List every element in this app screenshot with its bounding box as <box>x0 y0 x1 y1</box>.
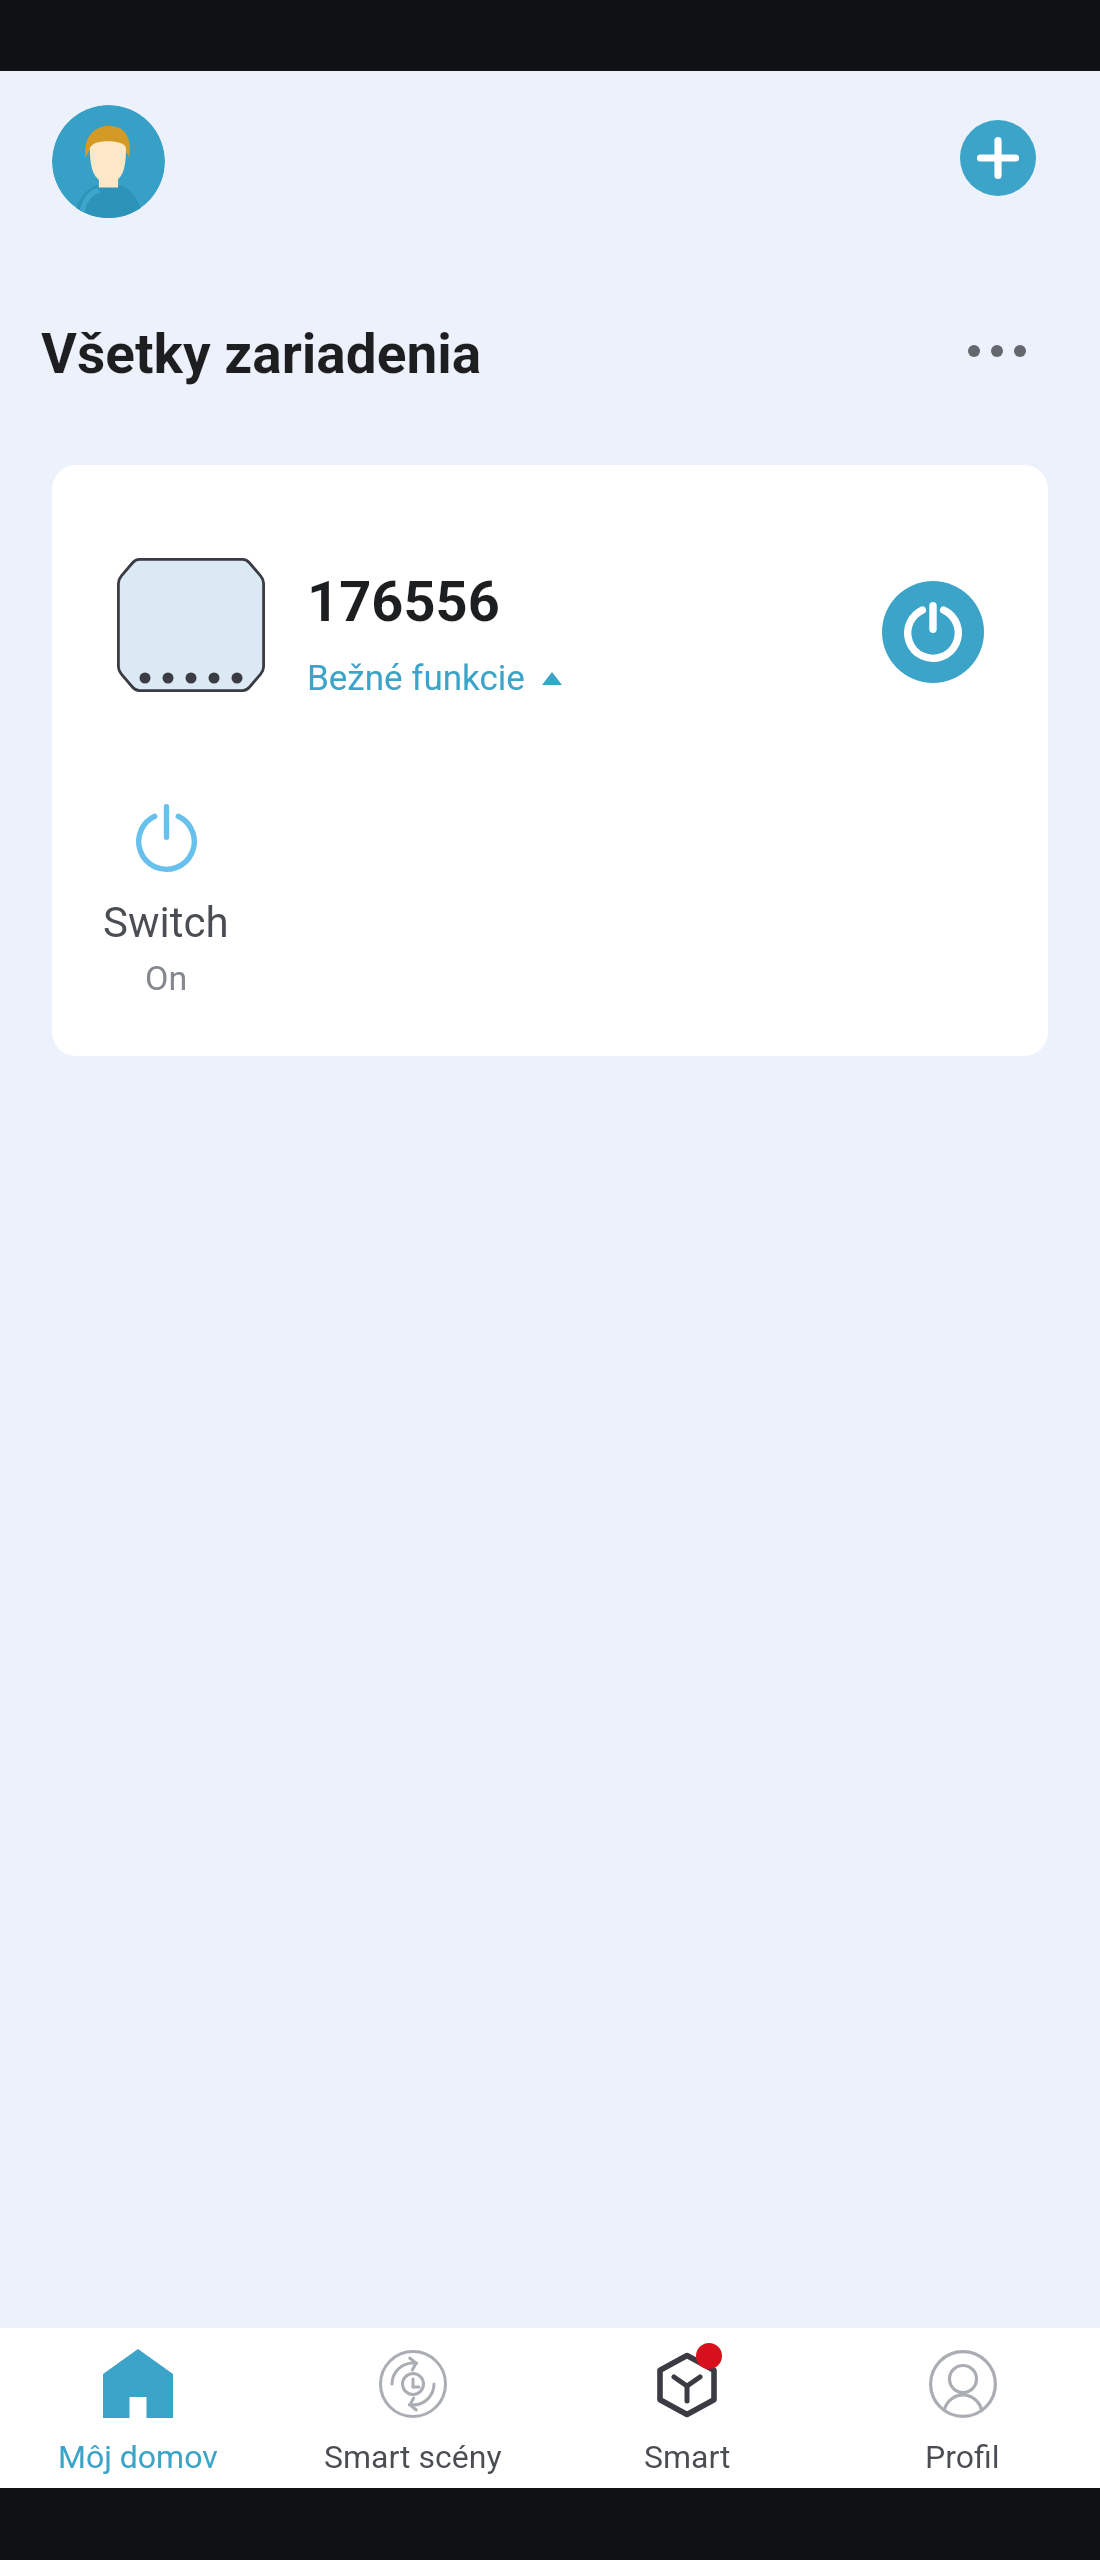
staticText: Bežné funkcie <box>307 658 525 699</box>
staticText: On <box>145 958 188 998</box>
staticText: Môj domov <box>58 2438 218 2476</box>
staticText: Profil <box>925 2438 1000 2476</box>
button[interactable]: Add device <box>960 120 1036 196</box>
button[interactable]: Profile avatar <box>52 105 165 218</box>
button[interactable]: Switch <box>61 804 271 998</box>
button[interactable]: Profil <box>825 2328 1100 2476</box>
staticText: 176556 <box>307 569 500 635</box>
button[interactable]: More options <box>952 306 1042 396</box>
button[interactable]: Power toggle <box>882 581 984 683</box>
button[interactable]: 176556 <box>52 465 1048 1056</box>
staticText: Smart scény <box>324 2438 502 2476</box>
staticText: Switch <box>103 898 229 947</box>
staticText: Všetky zariadenia <box>41 322 482 386</box>
button[interactable]: Bežné funkcie <box>307 658 562 699</box>
button[interactable]: Smart scény <box>275 2328 550 2476</box>
button[interactable]: Môj domov <box>0 2328 275 2476</box>
button[interactable]: Smart <box>550 2328 825 2476</box>
staticText: Smart <box>644 2438 731 2476</box>
